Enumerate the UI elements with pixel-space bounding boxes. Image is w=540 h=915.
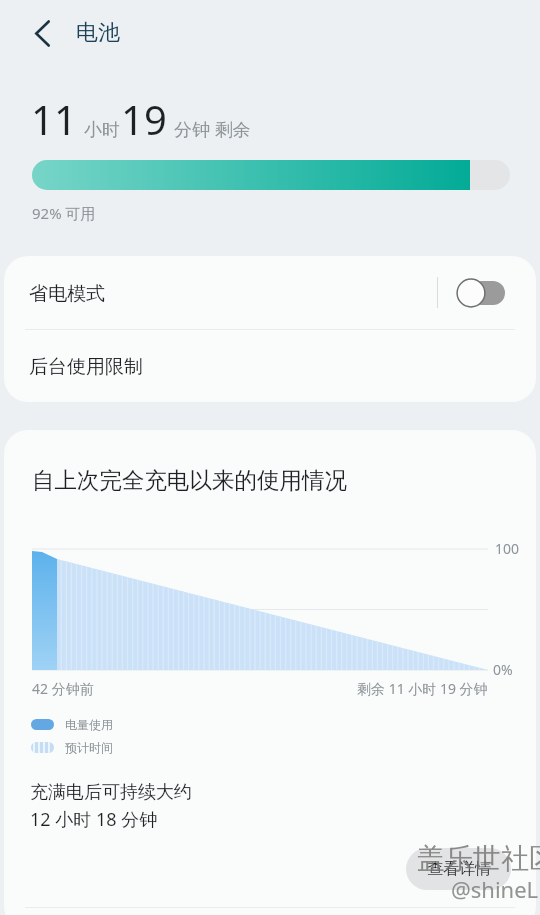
staticText: 查看详情 xyxy=(427,859,491,879)
staticText: 电池 xyxy=(76,19,120,47)
staticText: 自上次完全充电以来的使用情况 xyxy=(32,466,347,494)
staticText: @shineL xyxy=(451,874,539,904)
staticText: 后台使用限制 xyxy=(29,355,143,379)
staticText: 预计时间 xyxy=(65,740,113,755)
staticText: 分钟 剩余 xyxy=(174,117,251,142)
staticText: 省电模式 xyxy=(29,282,105,306)
staticText: 0% xyxy=(493,660,513,679)
staticText: 12 小时 18 分钟 xyxy=(30,807,158,832)
staticText: 100 xyxy=(495,539,520,558)
staticText: 19 xyxy=(121,92,167,146)
staticText: 电量使用 xyxy=(65,717,113,732)
staticText: 充满电后可持续大约 xyxy=(30,781,192,804)
staticText: 92% 可用 xyxy=(32,203,96,223)
button[interactable]: 查看详情 xyxy=(406,848,511,890)
staticText: 剩余 11 小时 19 分钟 xyxy=(357,679,488,698)
button[interactable]: 后台使用限制 xyxy=(4,330,536,402)
staticText: 11 xyxy=(31,92,77,146)
staticText: 42 分钟前 xyxy=(32,679,94,698)
staticText: 盖乐世社区 xyxy=(417,841,540,876)
button[interactable]: Back xyxy=(19,10,65,56)
staticText: 小时 xyxy=(84,119,120,142)
button[interactable]: 省电模式 xyxy=(4,256,536,329)
